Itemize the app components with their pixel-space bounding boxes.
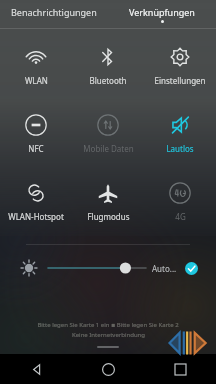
staticText: Auto...	[152, 263, 177, 274]
staticText: Bluetooth	[89, 75, 127, 86]
button[interactable]: Auto brightness	[182, 259, 200, 277]
button[interactable]: Einstellungen	[144, 38, 216, 94]
button[interactable]: Recent apps	[144, 354, 216, 384]
button[interactable]: Mobile Daten	[72, 106, 144, 162]
staticText: Bitte legen Sie Karte 1 ein ▪ Bitte lege…	[37, 321, 179, 329]
staticText: WLAN-Hotspot	[8, 211, 64, 222]
button[interactable]: Bluetooth	[72, 38, 144, 94]
button[interactable]: Brightness	[16, 255, 42, 281]
staticText: Einstellungen	[154, 75, 206, 86]
staticText: WLAN	[25, 75, 48, 86]
staticText: 4G	[175, 211, 186, 222]
button[interactable]: Back	[0, 354, 72, 384]
button[interactable]	[48, 254, 146, 282]
staticText: Keine Internetverbindung	[72, 331, 145, 339]
button[interactable]: Flugmodus	[72, 174, 144, 230]
staticText: Verknüpfungen	[129, 6, 195, 18]
button[interactable]: Verknüpfungen	[108, 0, 216, 28]
button[interactable]: Home	[72, 354, 144, 384]
button[interactable]: WLAN	[0, 38, 72, 94]
button[interactable]: WLAN-Hotspot	[0, 174, 72, 230]
button[interactable]: Benachrichtigungen	[0, 0, 108, 28]
button[interactable]: Lautlos	[144, 106, 216, 162]
button[interactable]: NFC	[0, 106, 72, 162]
staticText: Benachrichtigungen	[11, 6, 97, 18]
button[interactable]: 4G	[144, 174, 216, 230]
staticText: Flugmodus	[87, 211, 130, 222]
staticText: Lautlos	[166, 143, 194, 154]
staticText: NFC	[28, 143, 44, 154]
staticText: Mobile Daten	[83, 143, 134, 154]
